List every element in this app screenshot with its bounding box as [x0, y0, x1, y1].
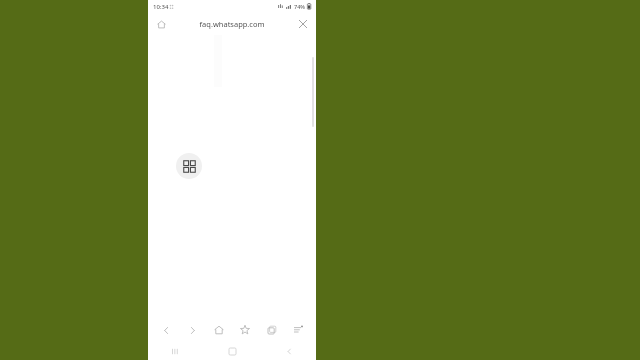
button[interactable]: Forward — [182, 320, 202, 340]
button[interactable]: Home — [223, 342, 241, 360]
button[interactable]: Tabs — [262, 320, 282, 340]
button[interactable]: Image placeholder — [176, 153, 202, 179]
button[interactable]: Home — [209, 320, 229, 340]
button[interactable]: Bookmark — [154, 17, 168, 31]
button[interactable]: Close — [296, 17, 310, 31]
button[interactable]: Recent apps — [166, 342, 184, 360]
button[interactable]: Back — [280, 342, 298, 360]
button[interactable]: faq.whatsapp.com — [193, 17, 271, 31]
staticText: 10:34 — [153, 3, 169, 11]
button[interactable]: Back — [156, 320, 176, 340]
staticText: 74% — [294, 3, 305, 10]
button[interactable]: Bookmarks — [235, 320, 255, 340]
button[interactable]: Menu — [288, 320, 308, 340]
